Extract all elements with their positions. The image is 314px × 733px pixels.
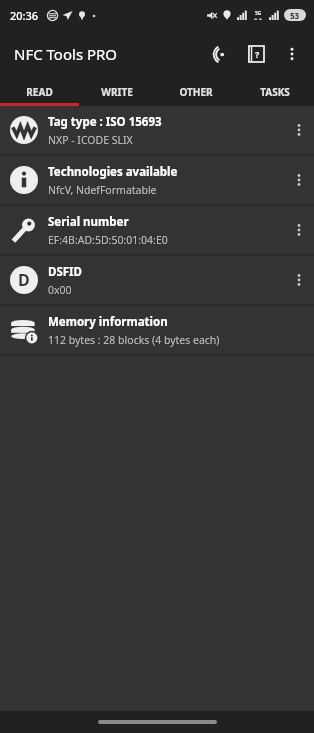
staticText: Technologies available [48, 164, 178, 180]
button[interactable]: OTHER [156, 78, 235, 106]
staticText: DSFID [48, 264, 82, 280]
staticText: 112 bytes : 28 blocks (4 bytes each) [48, 333, 220, 347]
button[interactable]: More options for DSFID [284, 256, 314, 304]
button[interactable]: TASKS [235, 78, 314, 106]
staticText: ? [255, 48, 260, 60]
staticText: EF:4B:AD:5D:50:01:04:E0 [48, 233, 168, 247]
button[interactable]: More options for Serial number [284, 206, 314, 254]
staticText: 0x00 [48, 283, 72, 297]
staticText: Tag type : ISO 15693 [48, 114, 162, 130]
button[interactable]: More options for Tag type : ISO 15693 [284, 106, 314, 154]
staticText: Memory information [48, 314, 168, 330]
button[interactable]: Memory information [0, 306, 314, 354]
button[interactable]: Help [238, 36, 274, 72]
staticText: 5G [255, 10, 262, 17]
staticText: NFC Tools PRO [14, 44, 118, 64]
button[interactable]: More options for Technologies available [284, 156, 314, 204]
button[interactable]: Technologies available [0, 156, 314, 204]
button[interactable]: Tag type : ISO 15693 [0, 106, 314, 154]
button[interactable]: D [0, 256, 314, 304]
staticText: 53 [290, 10, 300, 21]
staticText: NfcV, NdefFormatable [48, 183, 157, 197]
staticText: READ [26, 85, 53, 99]
staticText: D [18, 269, 30, 291]
staticText: OTHER [179, 85, 213, 99]
button[interactable]: READ [0, 78, 78, 106]
staticText: NXP - ICODE SLIX [48, 133, 133, 147]
staticText: Serial number [48, 214, 129, 230]
button[interactable]: More options [274, 36, 310, 72]
button[interactable]: Serial number [0, 206, 314, 254]
staticText: TASKS [260, 85, 290, 99]
button[interactable]: WRITE [78, 78, 156, 106]
staticText: WRITE [101, 85, 133, 99]
staticText: 20:36 [10, 8, 39, 23]
button[interactable]: NFC scan [202, 36, 238, 72]
